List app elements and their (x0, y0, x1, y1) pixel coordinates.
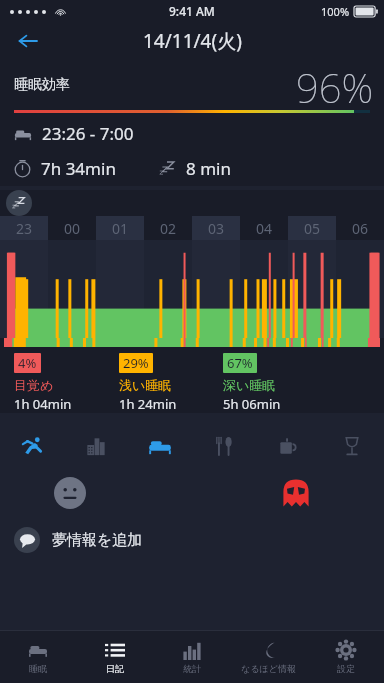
staticText: 01 (112, 219, 129, 238)
staticText: なるほど情報 (241, 663, 296, 674)
staticText: 夢情報を追加 (52, 531, 143, 550)
staticText: 統計 (183, 663, 201, 674)
button[interactable]: 設定 (307, 631, 384, 683)
staticText: 8 min (186, 157, 231, 180)
button[interactable]: なるほど情報 (230, 631, 307, 683)
staticText: 睡眠 (29, 663, 47, 674)
button[interactable]: Mood neutral (50, 473, 90, 513)
button[interactable]: 67% (223, 353, 327, 413)
button[interactable]: 統計 (153, 631, 230, 683)
button[interactable]: 29% (119, 353, 223, 413)
staticText: 4% (18, 354, 37, 372)
staticText: 23:26 - 7:00 (42, 122, 134, 145)
button[interactable]: Back (8, 22, 48, 60)
button[interactable]: 睡眠 (0, 631, 76, 683)
staticText: 04 (256, 219, 273, 238)
staticText: 睡眠効率 (14, 76, 70, 94)
staticText: 14/11/4(火) (143, 28, 242, 54)
button[interactable]: Coffee (256, 423, 320, 469)
button[interactable]: Nightmare (276, 473, 316, 513)
button[interactable]: 日記 (76, 631, 153, 683)
staticText: 深い睡眠 (223, 377, 276, 393)
button[interactable]: Exercise (0, 423, 64, 469)
staticText: 00 (64, 219, 81, 238)
staticText: 7h 34min (41, 157, 116, 180)
button[interactable]: Meal (192, 423, 256, 469)
staticText: 9:41 AM (169, 3, 215, 19)
staticText: 目覚め (14, 377, 54, 393)
button[interactable]: 夢情報を追加 (0, 517, 384, 563)
staticText: 23 (16, 219, 33, 238)
staticText: 設定 (337, 663, 355, 674)
staticText: 05 (304, 219, 321, 238)
staticText: 96% (296, 60, 374, 110)
button[interactable]: Bed (128, 423, 192, 469)
button[interactable]: Alcohol (320, 423, 384, 469)
staticText: 06 (352, 219, 369, 238)
staticText: 1h 24min (119, 395, 177, 413)
button[interactable]: 4% (14, 353, 119, 413)
button[interactable]: Work (64, 423, 128, 469)
staticText: 5h 06min (223, 395, 281, 413)
staticText: 日記 (106, 663, 124, 674)
staticText: 100% (321, 4, 350, 19)
staticText: 浅い睡眠 (119, 377, 172, 393)
staticText: 03 (208, 219, 225, 238)
staticText: 02 (160, 219, 177, 238)
staticText: 67% (227, 354, 253, 372)
staticText: 29% (123, 354, 149, 372)
staticText: 1h 04min (14, 395, 72, 413)
